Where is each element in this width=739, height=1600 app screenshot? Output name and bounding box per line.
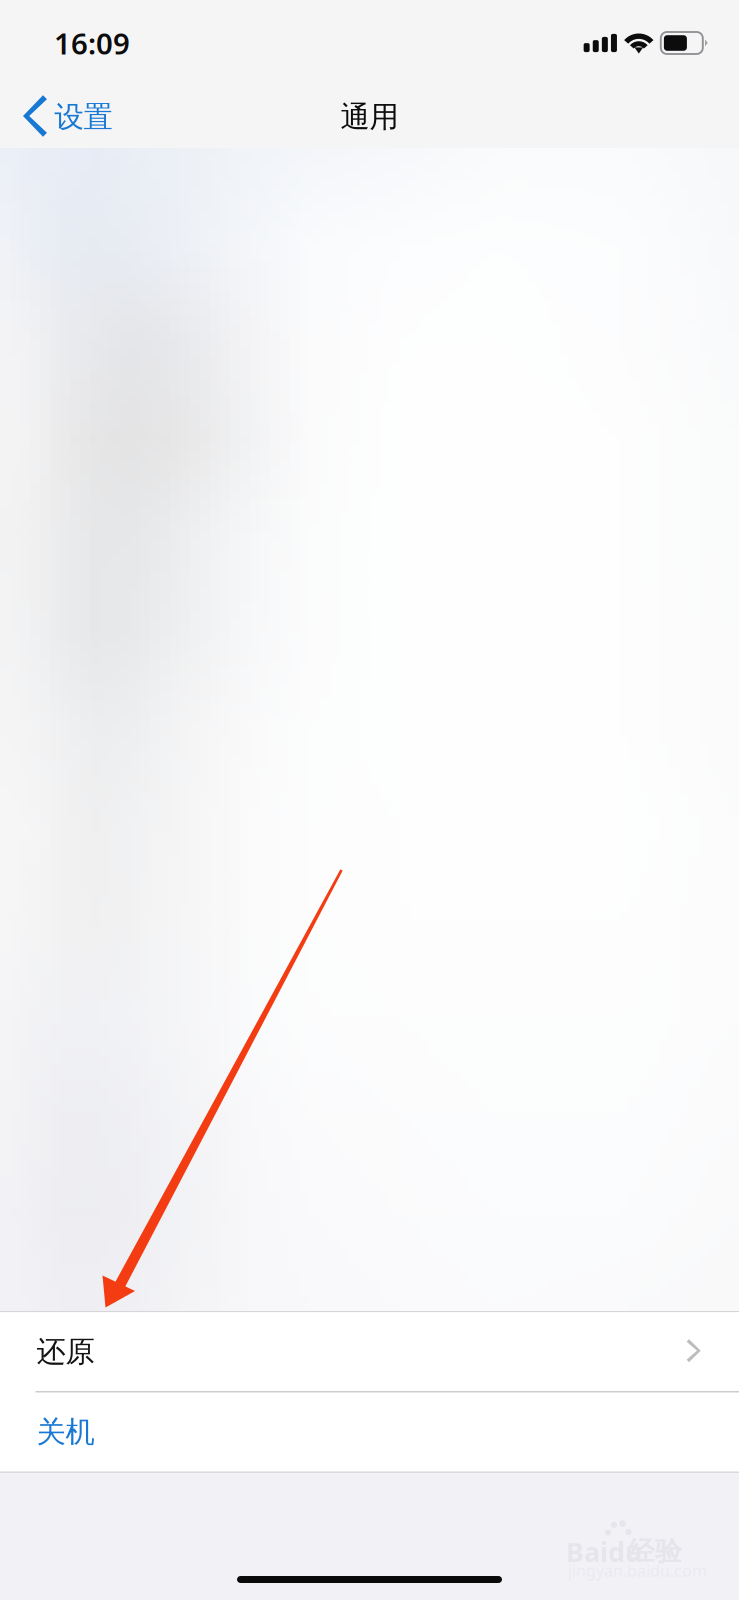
staticText: 关机 — [36, 1414, 94, 1450]
staticText: 经验 — [628, 1535, 682, 1568]
button[interactable]: 设置 — [0, 88, 112, 146]
staticText: 16:09 — [54, 23, 130, 62]
staticText: jingyan.baidu.com — [568, 1560, 707, 1581]
staticText: 设置 — [54, 99, 112, 135]
staticText: 还原 — [36, 1334, 94, 1370]
staticText: 通用 — [340, 99, 398, 135]
button[interactable]: 关机 — [0, 1393, 739, 1472]
staticText: Baidu — [566, 1534, 642, 1569]
button[interactable]: 还原 — [0, 1312, 739, 1391]
